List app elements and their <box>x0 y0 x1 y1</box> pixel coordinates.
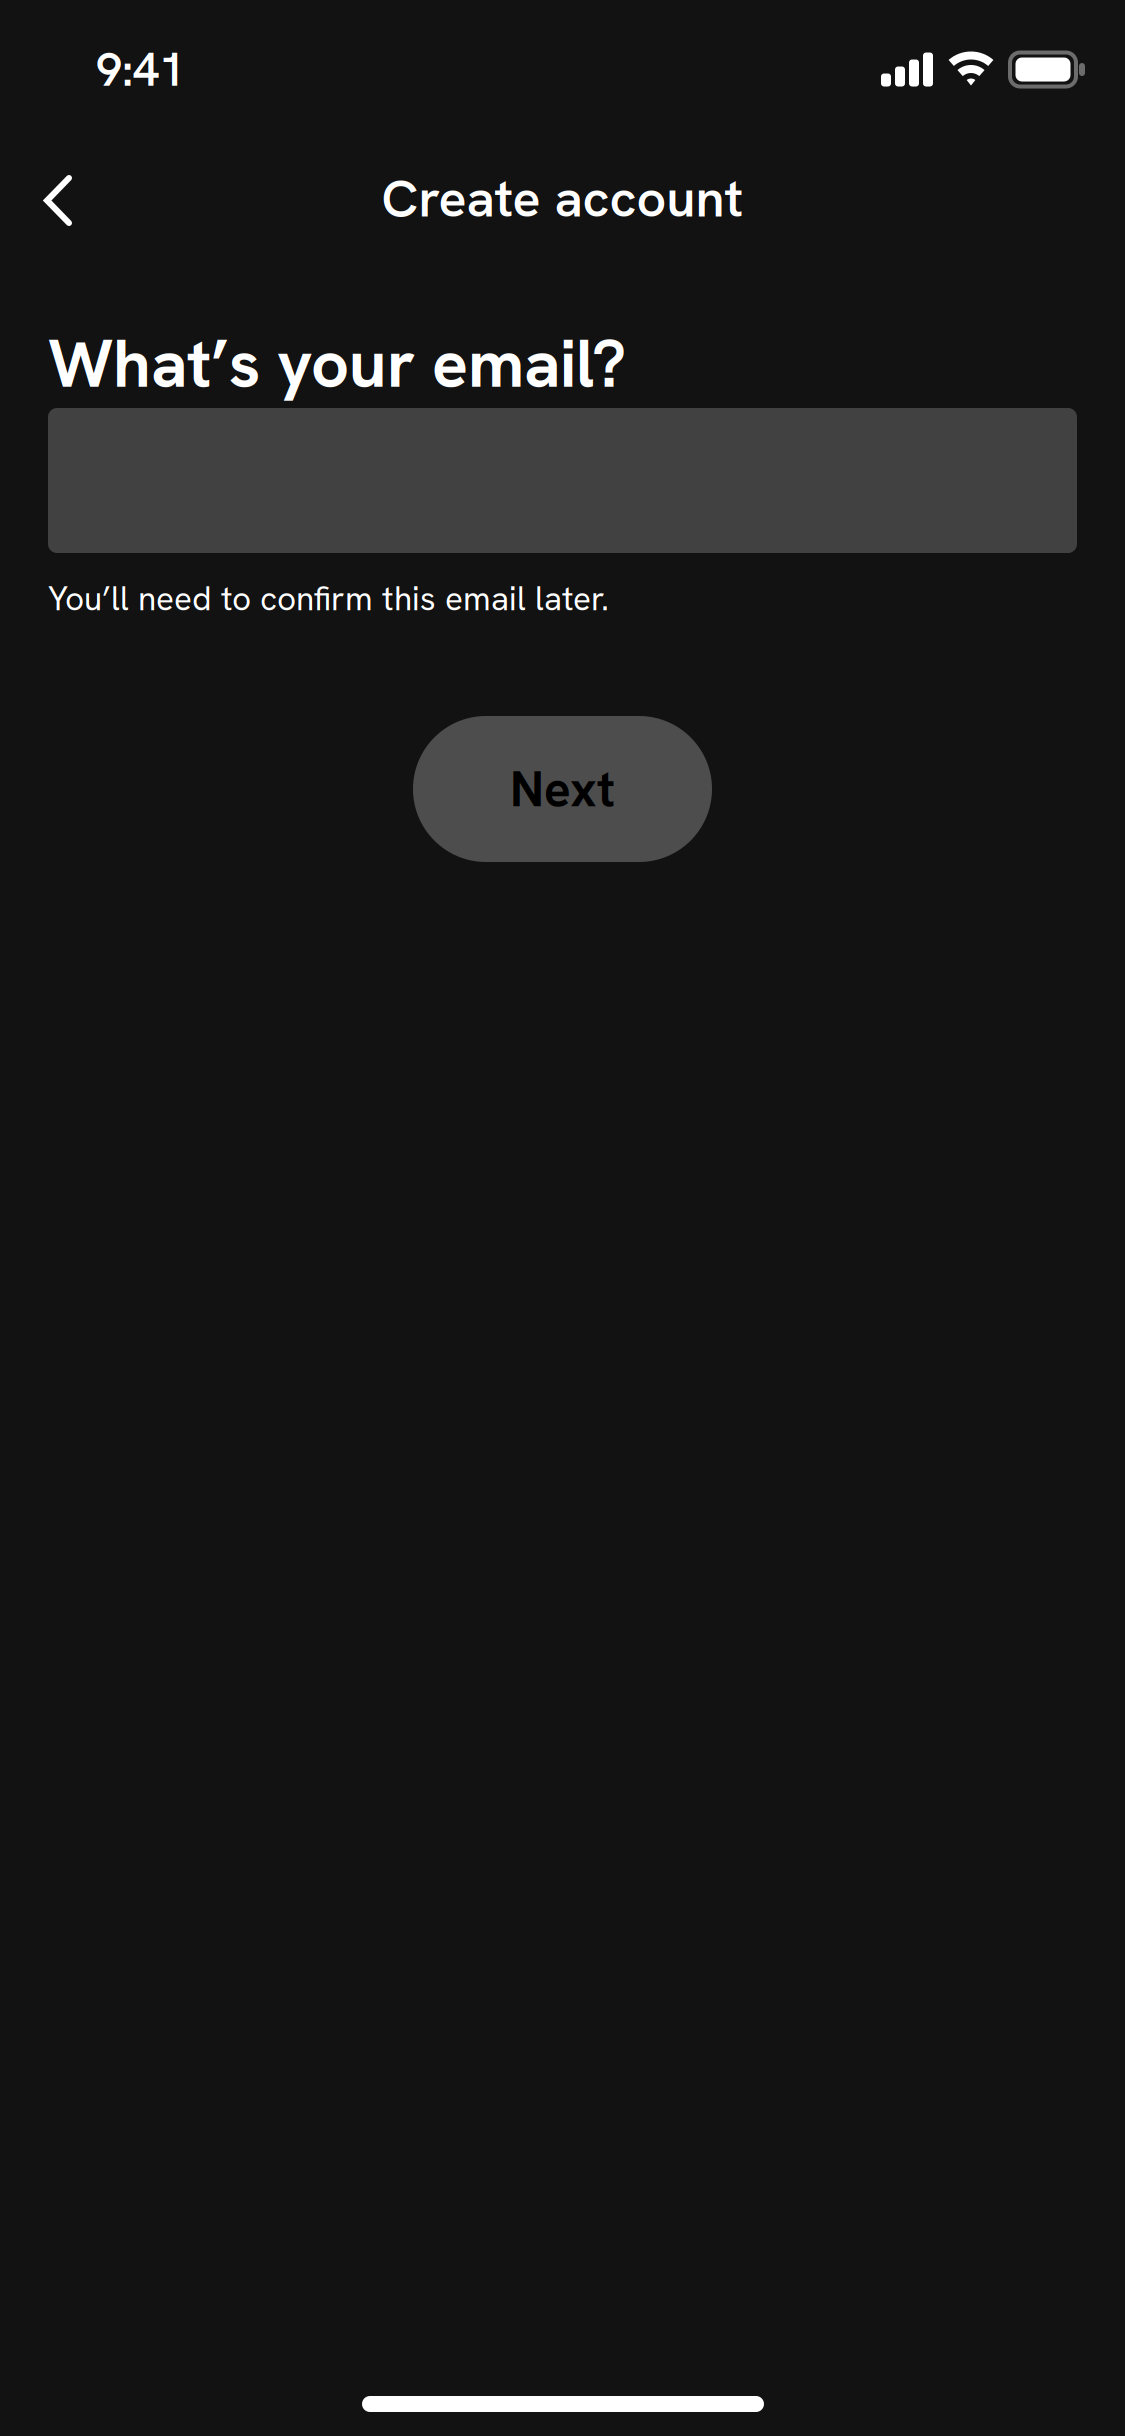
button[interactable]: Next <box>413 716 712 862</box>
staticText: 9:41 <box>96 39 185 100</box>
button[interactable]: Create account <box>230 148 895 249</box>
staticText: Next <box>510 757 615 821</box>
staticText: You’ll need to confirm this email later. <box>48 577 609 620</box>
staticText: What’s your email? <box>48 320 626 407</box>
staticText: Create account <box>381 165 743 232</box>
button[interactable]: Back <box>0 149 118 252</box>
